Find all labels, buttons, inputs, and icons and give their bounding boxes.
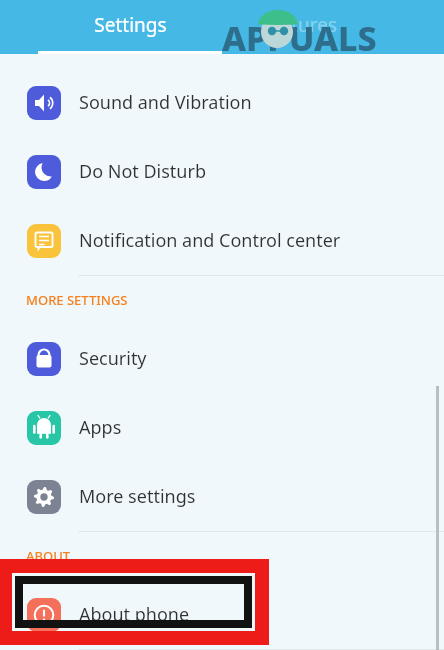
staticText: Settings [94, 12, 167, 38]
staticText: Security [79, 346, 147, 371]
button[interactable]: Settings [38, 0, 222, 54]
staticText: Do Not Disturb [79, 159, 206, 184]
button[interactable]: Apps [0, 393, 444, 462]
staticText: ABOUT [26, 547, 71, 565]
button[interactable]: More settings [0, 462, 444, 531]
staticText: About phone [79, 602, 190, 627]
staticText: Apps [79, 415, 122, 440]
staticText: Features [260, 12, 338, 38]
staticText: More settings [79, 484, 196, 509]
button[interactable]: Sound and Vibration [0, 68, 444, 137]
button[interactable]: Do Not Disturb [0, 137, 444, 206]
button[interactable]: About phone [0, 580, 444, 649]
staticText: Notification and Control center [79, 228, 341, 253]
button[interactable]: About phone highlighted [5, 566, 262, 638]
button[interactable]: Security [0, 324, 444, 393]
staticText: MORE SETTINGS [26, 291, 128, 309]
staticText: Sound and Vibration [79, 90, 252, 115]
button[interactable]: Notification and Control center [0, 206, 444, 275]
staticText: APPUALS [222, 15, 377, 61]
button[interactable]: Features [238, 0, 398, 54]
